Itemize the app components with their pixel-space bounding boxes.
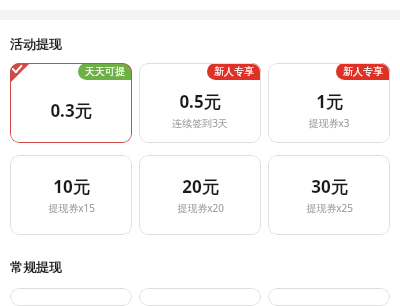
- button[interactable]: 新人专享: [268, 63, 390, 143]
- staticText: 提现券x15: [48, 201, 95, 215]
- staticText: 连续签到3天: [172, 116, 228, 130]
- staticText: 10元: [53, 175, 90, 198]
- staticText: 20元: [182, 175, 219, 198]
- button[interactable]: [268, 288, 390, 306]
- button[interactable]: 20元: [139, 155, 261, 235]
- staticText: 1元: [316, 90, 343, 113]
- staticText: 活动提现: [10, 36, 62, 52]
- staticText: 0.3元: [50, 99, 92, 122]
- staticText: 0.5元: [179, 90, 221, 113]
- staticText: 提现券x20: [177, 201, 224, 215]
- staticText: 提现券x3: [308, 116, 350, 130]
- staticText: 新人专享: [343, 65, 383, 78]
- staticText: 30元: [311, 175, 348, 198]
- button[interactable]: 30元: [268, 155, 390, 235]
- staticText: 新人专享: [214, 65, 254, 78]
- staticText: 提现券x25: [306, 201, 353, 215]
- staticText: 常规提现: [10, 259, 62, 275]
- staticText: 天天可提: [85, 65, 125, 78]
- button[interactable]: 天天可提: [10, 63, 132, 143]
- button[interactable]: [10, 288, 132, 306]
- button[interactable]: 新人专享: [139, 63, 261, 143]
- button[interactable]: [139, 288, 261, 306]
- button[interactable]: 10元: [10, 155, 132, 235]
